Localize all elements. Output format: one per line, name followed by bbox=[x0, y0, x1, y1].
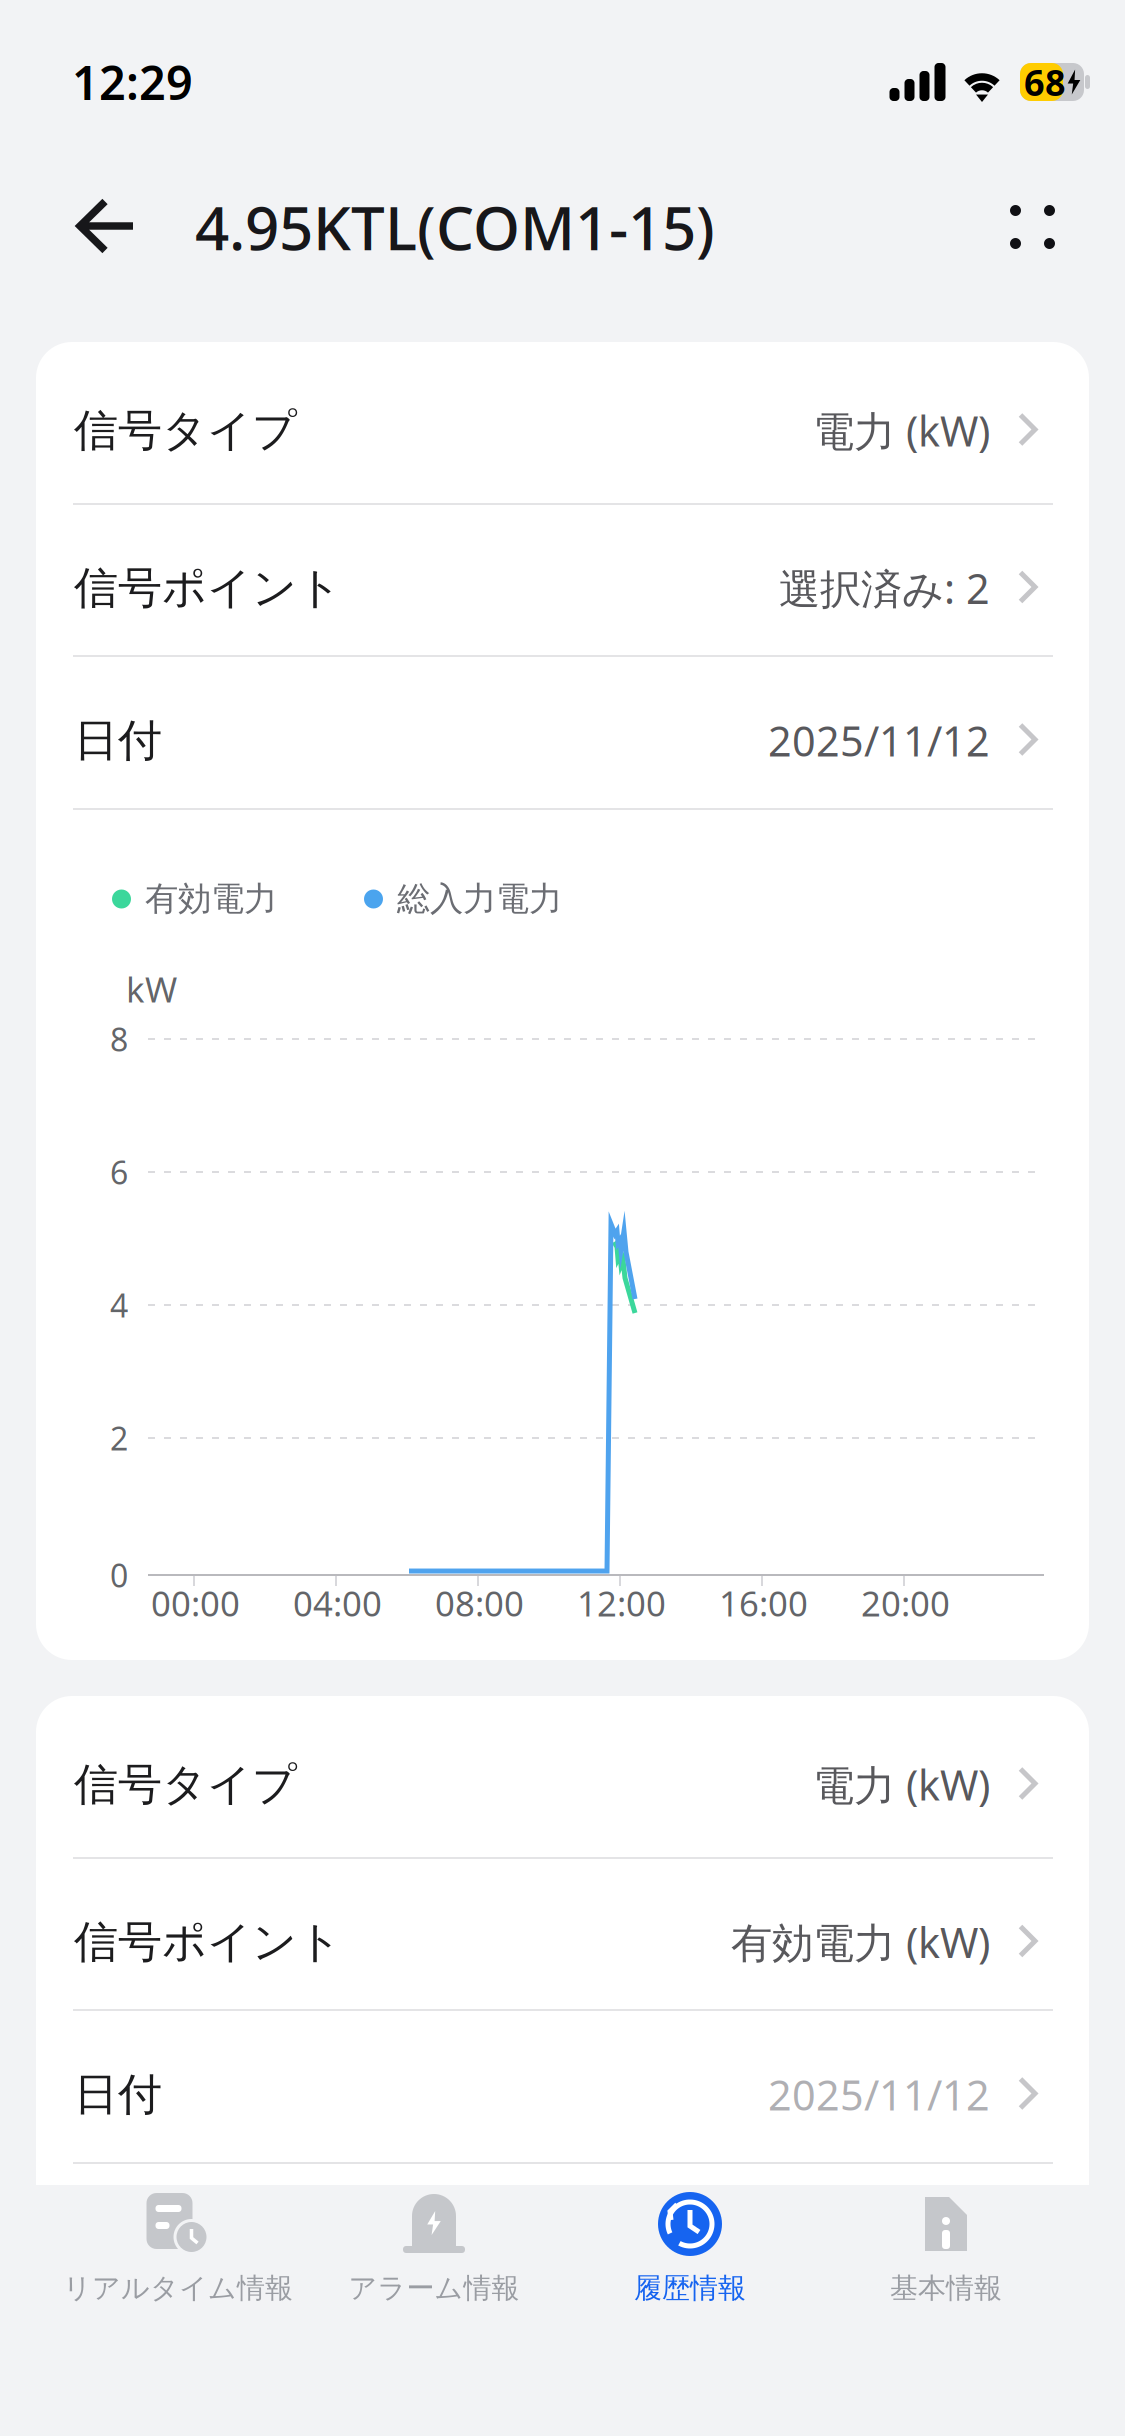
staticText: アラーム情報 bbox=[348, 2271, 519, 2305]
staticText: 日付 bbox=[74, 2067, 162, 2121]
staticText: 選択済み: 2 bbox=[779, 561, 990, 615]
staticText: 4 bbox=[110, 1284, 128, 1326]
staticText: 電力 (kW) bbox=[813, 403, 990, 458]
staticText: 0 bbox=[110, 1554, 128, 1596]
staticText: 20:00 bbox=[861, 1580, 950, 1626]
button[interactable]: 信号ポイント bbox=[36, 505, 1089, 655]
button[interactable]: More options bbox=[1010, 167, 1125, 287]
button[interactable]: 信号ポイント bbox=[36, 2164, 1089, 2314]
staticText: 00:00 bbox=[151, 1580, 240, 1626]
staticText: 総入力電力 bbox=[397, 878, 562, 919]
button[interactable]: 履歴情報 bbox=[562, 2192, 818, 2337]
button[interactable]: アラーム情報 bbox=[306, 2192, 562, 2337]
staticText: 信号ポイント bbox=[74, 561, 342, 615]
staticText: 08:00 bbox=[435, 1580, 524, 1626]
staticText: 04:00 bbox=[293, 1580, 382, 1626]
staticText: 6 bbox=[110, 1151, 128, 1193]
staticText: kW bbox=[126, 966, 177, 1012]
staticText: 有効電力 bbox=[145, 878, 277, 919]
staticText: リアルタイム情報 bbox=[63, 2271, 293, 2305]
button[interactable]: 信号タイプ bbox=[36, 1696, 1089, 1857]
staticText: 日付 bbox=[74, 713, 162, 767]
staticText: 信号ポイント bbox=[74, 2220, 342, 2274]
staticText: 信号ポイント bbox=[74, 1915, 342, 1969]
staticText: 2 bbox=[110, 1417, 128, 1459]
staticText: 信号タイプ bbox=[74, 403, 297, 457]
staticText: 68 bbox=[1024, 58, 1066, 106]
staticText: 履歴情報 bbox=[634, 2271, 746, 2305]
staticText: 電力 (kW) bbox=[813, 1757, 990, 1812]
staticText: 16:00 bbox=[719, 1580, 808, 1626]
staticText: 基本情報 bbox=[890, 2271, 1002, 2305]
button[interactable]: 日付 bbox=[36, 2011, 1089, 2162]
staticText: 12:00 bbox=[577, 1580, 666, 1626]
staticText: 2025/11/12 bbox=[768, 2067, 990, 2122]
button[interactable]: リアルタイム情報 bbox=[50, 2192, 306, 2337]
button[interactable]: 日付 bbox=[36, 657, 1089, 808]
staticText: 有効電力 (kW) bbox=[731, 1915, 990, 1969]
staticText: 2025/11/12 bbox=[768, 713, 990, 768]
button[interactable]: Back bbox=[0, 167, 195, 287]
button[interactable]: 信号タイプ bbox=[36, 342, 1089, 503]
staticText: 8 bbox=[110, 1018, 128, 1060]
staticText: 4.95KTL(COM1-15) bbox=[195, 187, 715, 267]
staticText: 12:29 bbox=[72, 51, 193, 113]
button[interactable]: 基本情報 bbox=[818, 2192, 1074, 2337]
button[interactable]: 信号ポイント bbox=[36, 1859, 1089, 2009]
staticText: 信号タイプ bbox=[74, 1757, 297, 1811]
